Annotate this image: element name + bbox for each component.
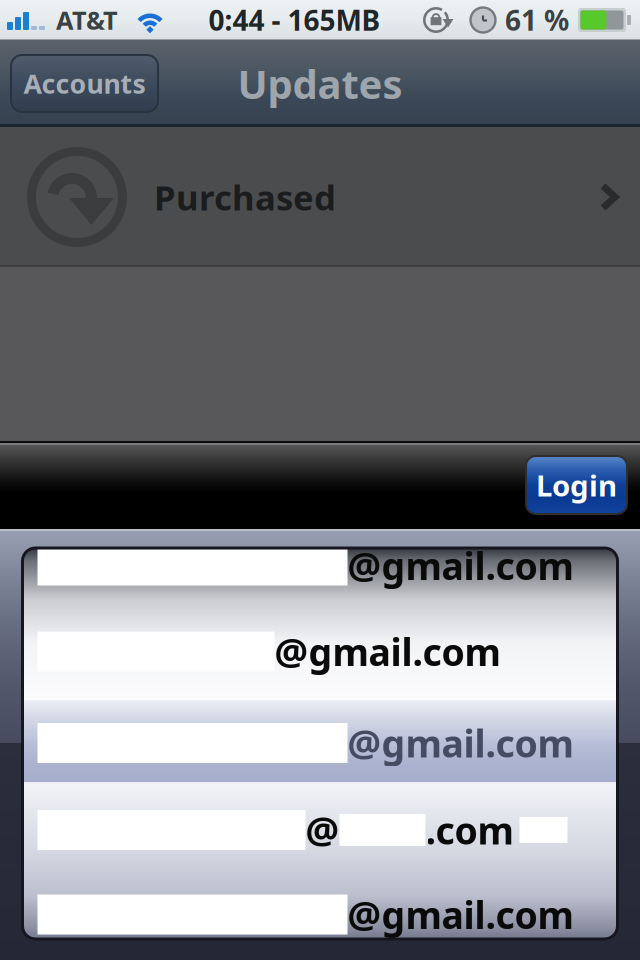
staticText: 61 % [505,1,569,39]
staticText: @gmail.com [274,627,500,676]
staticText: Login [536,465,617,504]
staticText: AT&T [56,3,118,37]
staticText: .com [425,805,513,855]
button[interactable]: @gmail.com [22,876,617,939]
staticText: @gmail.com [347,718,573,768]
button[interactable]: @ [22,784,617,876]
button[interactable]: @gmail.com [22,548,617,613]
button[interactable]: Purchased [0,127,640,267]
button[interactable]: @gmail.com [22,702,617,782]
button[interactable]: Login [526,456,627,514]
button[interactable]: Accounts [11,55,158,112]
button[interactable]: @gmail.com [22,613,617,700]
staticText: Updates [237,57,402,110]
staticText: Purchased [154,174,336,220]
staticText: @ [305,805,339,855]
staticText: @gmail.com [347,890,573,939]
staticText: @gmail.com [347,541,573,590]
staticText: Accounts [23,66,145,101]
staticText: 0:44 - 165MB [208,1,380,39]
